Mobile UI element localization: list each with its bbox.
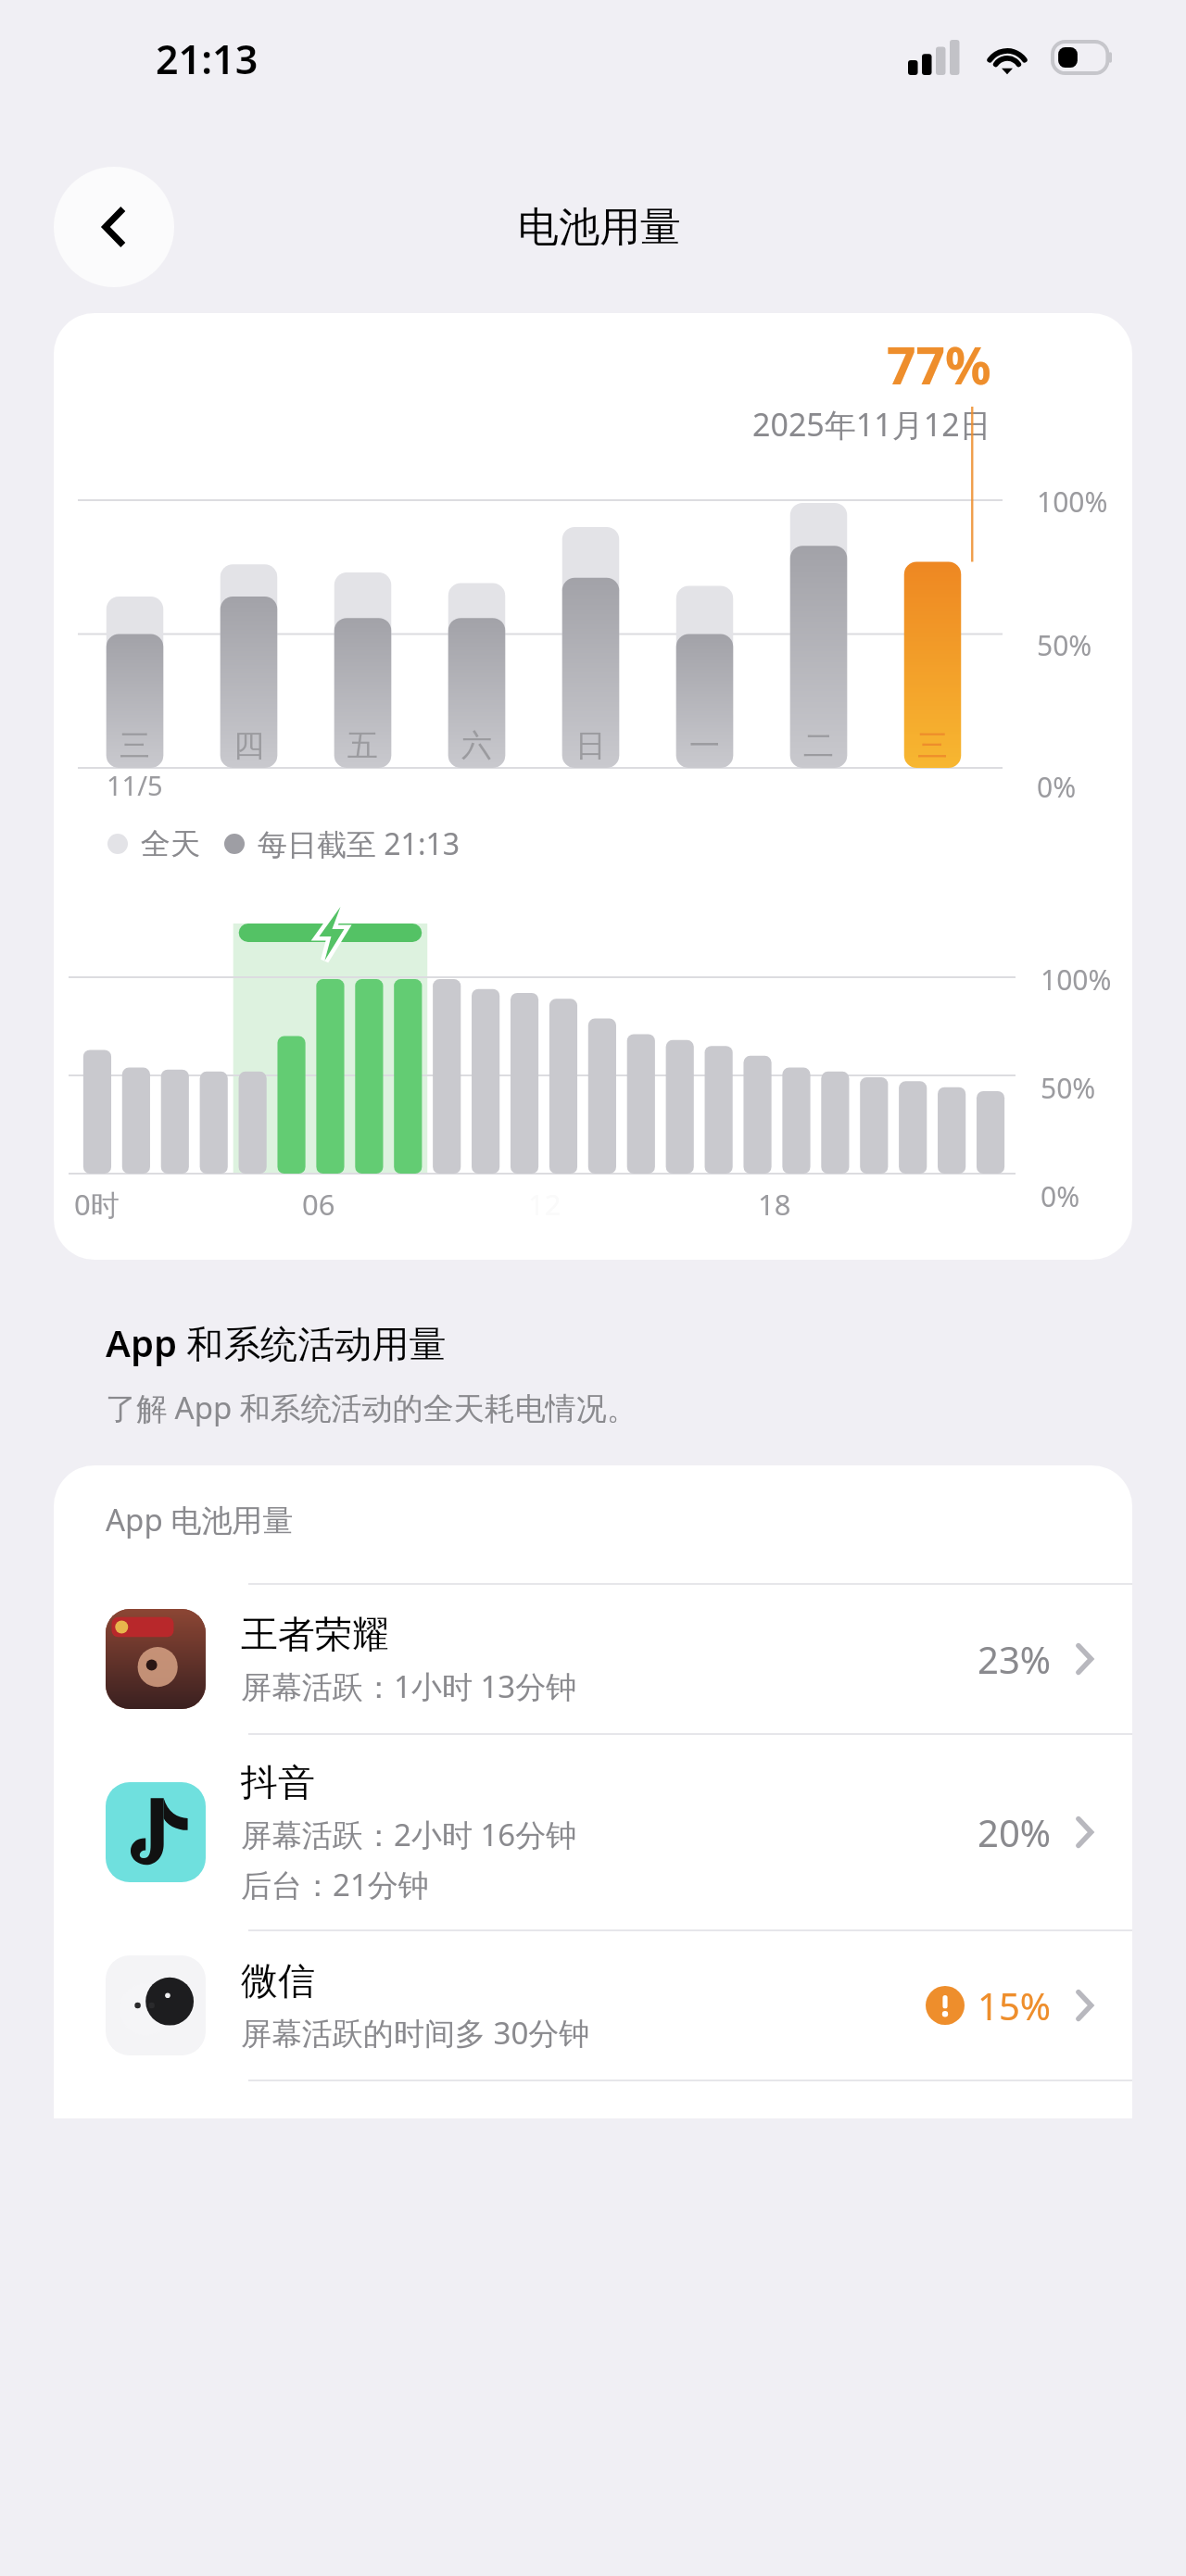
staticText: 了解 App 和系统活动的全天耗电情况。	[106, 1387, 637, 1428]
button[interactable]: 抖音	[54, 1735, 1132, 1929]
staticText: 06	[302, 1185, 335, 1224]
staticText: 屏幕活跃：2小时 16分钟	[241, 1814, 577, 1855]
button[interactable]: Back	[54, 167, 174, 287]
staticText: 屏幕活跃：1小时 13分钟	[241, 1665, 577, 1707]
staticText: 18	[758, 1185, 791, 1224]
staticText: 日	[575, 726, 606, 765]
staticText: 后台：21分钟	[241, 1864, 429, 1905]
staticText: 20%	[978, 1807, 1051, 1857]
staticText: 三	[917, 726, 948, 765]
staticText: 77%	[887, 330, 991, 399]
staticText: 六	[461, 726, 492, 765]
staticText: 全天	[141, 825, 200, 862]
staticText: App 电池用量	[106, 1499, 294, 1540]
staticText: 100%	[1037, 483, 1108, 521]
staticText: 2025年11月12日	[752, 403, 991, 446]
staticText: 15%	[978, 1980, 1051, 2030]
staticText: 每日截至 21:13	[258, 823, 461, 864]
staticText: 电池用量	[518, 202, 681, 253]
staticText: 屏幕活跃的时间多 30分钟	[241, 2012, 590, 2054]
staticText: 四	[233, 726, 264, 765]
staticText: 50%	[1037, 626, 1092, 664]
staticText: 100%	[1041, 961, 1112, 999]
button[interactable]: 王者荣耀	[54, 1585, 1132, 1733]
staticText: 0%	[1041, 1177, 1080, 1215]
staticText: 50%	[1041, 1069, 1096, 1107]
staticText: 11/5	[107, 767, 163, 803]
staticText: 三	[120, 726, 150, 765]
staticText: 一	[689, 726, 720, 765]
staticText: App 和系统活动用量	[106, 1317, 447, 1368]
staticText: 23%	[978, 1634, 1051, 1684]
staticText: 王者荣耀	[241, 1611, 389, 1657]
staticText: 二	[803, 726, 834, 765]
staticText: 五	[347, 726, 378, 765]
staticText: 抖音	[241, 1759, 315, 1805]
staticText: 21:13	[156, 31, 259, 86]
staticText: 微信	[241, 1957, 315, 2004]
staticText: 0时	[74, 1185, 120, 1224]
staticText: 0%	[1037, 768, 1077, 803]
button[interactable]: 微信	[54, 1931, 1132, 2080]
